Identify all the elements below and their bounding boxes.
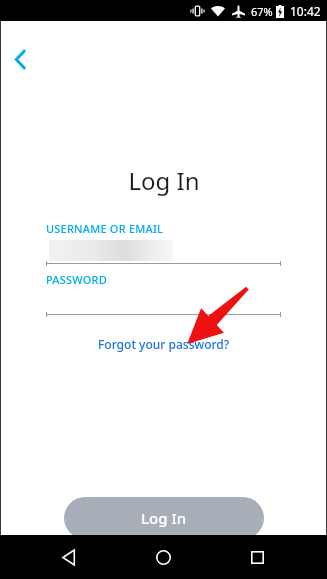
- button[interactable]: Log In: [64, 497, 264, 539]
- button[interactable]: Back: [4, 43, 36, 75]
- button[interactable]: [46, 291, 281, 313]
- staticText: Forgot your password?: [98, 336, 230, 352]
- staticText: Log In: [128, 164, 200, 197]
- button[interactable]: Back: [45, 535, 93, 579]
- staticText: USERNAME OR EMAIL: [46, 221, 164, 236]
- button[interactable]: Home: [139, 535, 187, 579]
- staticText: Log In: [141, 508, 187, 528]
- staticText: PASSWORD: [46, 272, 107, 287]
- button[interactable]: [46, 240, 281, 262]
- staticText: 10:42: [290, 3, 321, 19]
- staticText: 67%: [251, 4, 273, 19]
- button[interactable]: Recent apps: [233, 535, 281, 579]
- button[interactable]: Forgot your password?: [98, 336, 230, 352]
